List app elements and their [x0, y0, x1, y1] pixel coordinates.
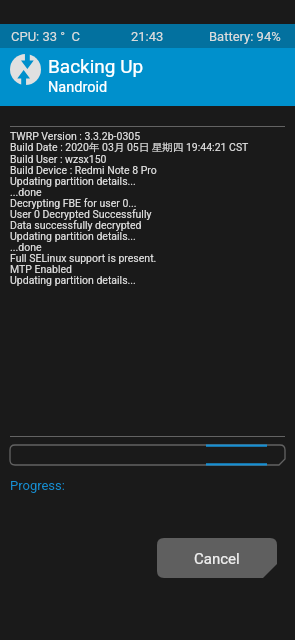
staticText: Progress: — [10, 478, 65, 493]
staticText: Backing Up — [48, 55, 144, 77]
staticText: TWRP Version : 3.3.2b-0305 Build Date : … — [10, 130, 249, 287]
button[interactable]: Progress — [10, 445, 285, 465]
staticText: Cancel — [194, 550, 240, 568]
staticText: CPU: 33 ° C — [11, 29, 81, 44]
staticText: Battery: 94% — [209, 29, 281, 44]
staticText: Nandroid — [48, 79, 108, 96]
button[interactable]: Cancel — [157, 538, 277, 578]
staticText: 21:43 — [131, 29, 164, 44]
